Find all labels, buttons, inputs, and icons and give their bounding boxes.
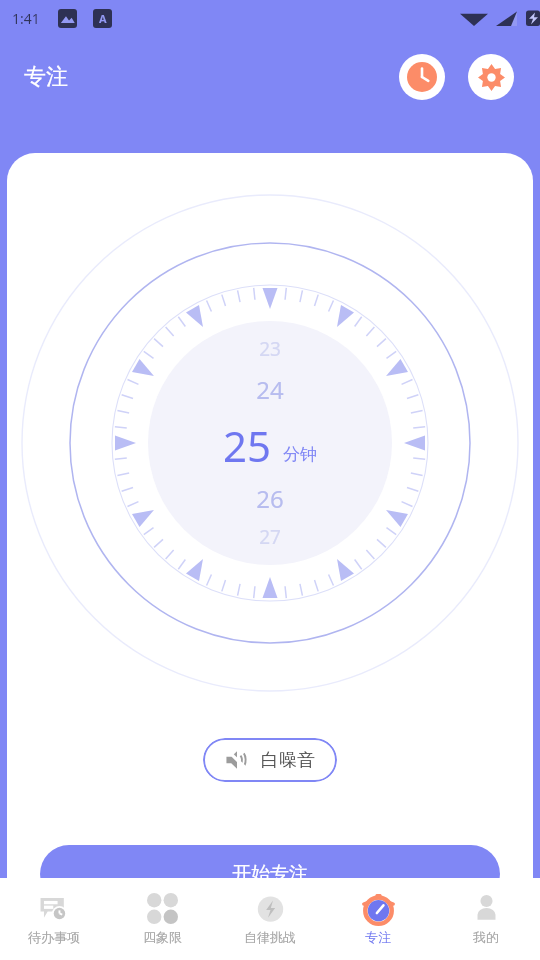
button[interactable]: 开始专注 — [40, 845, 500, 903]
button[interactable]: Settings — [468, 54, 514, 100]
staticText: 23 — [259, 336, 281, 362]
button[interactable]: 自律挑战 — [216, 878, 324, 960]
button[interactable]: 专注 — [324, 878, 432, 960]
staticText: 专注 — [24, 63, 68, 91]
staticText: 分钟 — [283, 444, 317, 465]
staticText: 自律挑战 — [244, 929, 296, 945]
button[interactable]: 我的 — [432, 878, 540, 960]
staticText: 26 — [256, 482, 284, 515]
staticText: 开始专注 — [232, 862, 308, 886]
staticText: 待办事项 — [28, 929, 80, 945]
staticText: 1:41 — [12, 9, 40, 28]
staticText: 我的 — [473, 929, 499, 945]
button[interactable]: 白噪音 — [203, 738, 337, 782]
staticText: 专注 — [365, 929, 391, 945]
staticText: 白噪音 — [261, 749, 315, 772]
staticText: 27 — [259, 524, 281, 550]
button[interactable]: Focus records — [399, 54, 445, 100]
staticText: 24 — [256, 373, 284, 406]
staticText: 25 — [223, 417, 272, 474]
staticText: 四象限 — [143, 929, 182, 945]
staticText: A — [99, 11, 107, 26]
button[interactable]: 待办事项 — [0, 878, 108, 960]
button[interactable]: 四象限 — [108, 878, 216, 960]
